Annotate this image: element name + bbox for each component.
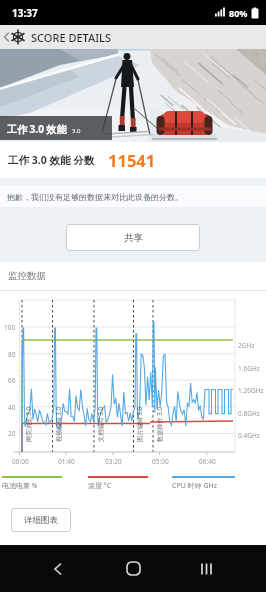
staticText: 1.6GHz [238, 364, 260, 373]
button[interactable] [126, 561, 141, 576]
staticText: 01:40 [58, 457, 75, 466]
button[interactable] [200, 562, 214, 576]
staticText: 3.0 [72, 127, 81, 135]
staticText: 视频编辑 3.0 [54, 406, 62, 442]
staticText: 数据操作 3.0 [155, 406, 163, 442]
staticText: 2GHz [238, 341, 255, 350]
staticText: 网页浏览 3.0 [24, 406, 32, 442]
staticText: 详细图表 [24, 515, 58, 526]
staticText: 40 [8, 403, 16, 412]
staticText: 80 [8, 350, 16, 359]
staticText: 100 [4, 323, 16, 332]
staticText: 20 [8, 429, 16, 438]
staticText: 80% [229, 7, 248, 19]
staticText: 11541 [108, 149, 156, 171]
staticText: 03:20 [105, 457, 122, 466]
staticText: 00:00 [12, 457, 29, 466]
staticText: 0.8GHz [238, 409, 260, 418]
button[interactable]: SCORE DETAILS [0, 25, 266, 49]
staticText: 电池电量 % [2, 481, 38, 491]
staticText: 1.20GHz [238, 386, 264, 395]
staticText: CPU 时钟 GHz [172, 481, 217, 491]
button[interactable]: 共享 [66, 224, 200, 251]
staticText: 抱歉，我们没有足够的数据来对比此设备的分数。 [7, 192, 183, 202]
staticText: 13:37 [12, 6, 38, 20]
staticText: SCORE DETAILS [31, 30, 111, 45]
button[interactable] [52, 562, 64, 576]
staticText: 工作 3.0 效能 [7, 122, 67, 136]
staticText: 文档编写 3.0 [96, 406, 104, 442]
staticText: 共享 [124, 232, 143, 244]
staticText: 温度 °C [88, 481, 112, 491]
staticText: 监控数据 [8, 270, 46, 282]
staticText: 06:40 [199, 457, 216, 466]
staticText: 图片编辑 3.0 [135, 406, 143, 442]
staticText: 0.4GHz [238, 431, 260, 440]
staticText: 60 [8, 376, 16, 385]
staticText: 工作 3.0 效能 分数 [8, 153, 95, 167]
button[interactable]: 详细图表 [11, 508, 71, 532]
staticText: 05:00 [152, 457, 169, 466]
